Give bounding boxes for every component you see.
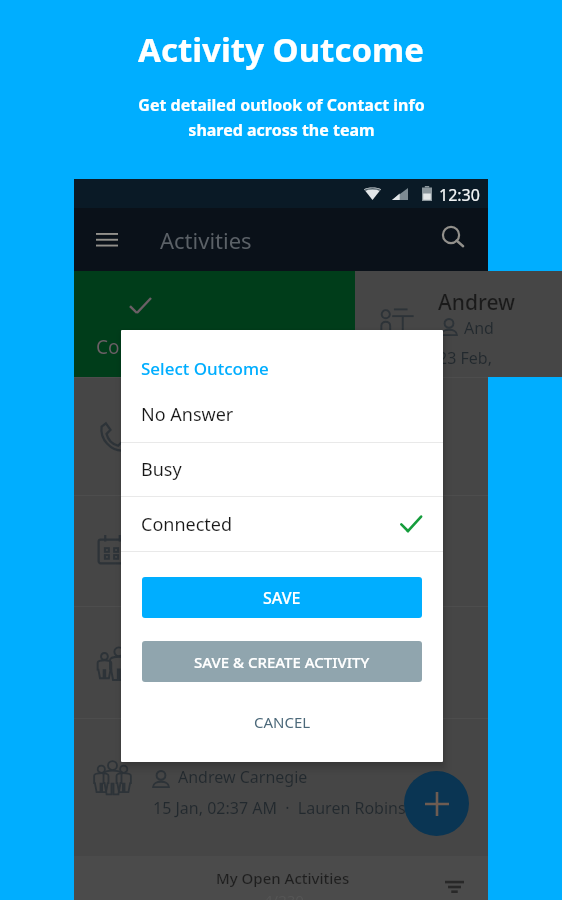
button[interactable]: SAVE & CREATE ACTIVITY (142, 641, 422, 682)
staticText: 23 Feb, (438, 347, 492, 369)
staticText: Connected (141, 512, 233, 537)
staticText: My Open Activities (216, 868, 350, 888)
staticText: Activity Outcome (138, 27, 424, 72)
button[interactable] (74, 718, 488, 837)
staticText: And (464, 317, 494, 339)
staticText: Andrew Carnegie (178, 766, 308, 788)
staticText: Busy (141, 457, 182, 482)
button[interactable]: CANCEL (121, 698, 443, 746)
button[interactable] (74, 606, 488, 718)
button[interactable]: Open navigation menu (83, 216, 131, 264)
staticText: Select Outcome (141, 357, 269, 380)
staticText: No Answer (141, 402, 234, 427)
button[interactable]: Filter (436, 868, 472, 900)
staticText: Get detailed outlook of Contact info sha… (138, 94, 425, 140)
button[interactable]: Connected (121, 497, 443, 551)
staticText: 12:30 (439, 184, 480, 206)
button[interactable]: Add activity (404, 771, 469, 836)
staticText: 15 Jan, 02:37 AM · Lauren Robins (153, 797, 406, 819)
button[interactable] (74, 495, 488, 606)
staticText: Activities (160, 225, 252, 255)
staticText: Andrew (438, 288, 515, 317)
button[interactable]: Search (429, 213, 477, 261)
button[interactable]: Busy (121, 442, 443, 496)
button[interactable] (74, 377, 488, 495)
button[interactable]: SAVE (142, 577, 422, 618)
staticText: SAVE (263, 587, 301, 609)
staticText: CANCEL (254, 712, 311, 732)
button[interactable]: No Answer (121, 387, 443, 441)
staticText: Connected (96, 334, 193, 360)
staticText: SAVE & CREATE ACTIVITY (194, 652, 370, 672)
